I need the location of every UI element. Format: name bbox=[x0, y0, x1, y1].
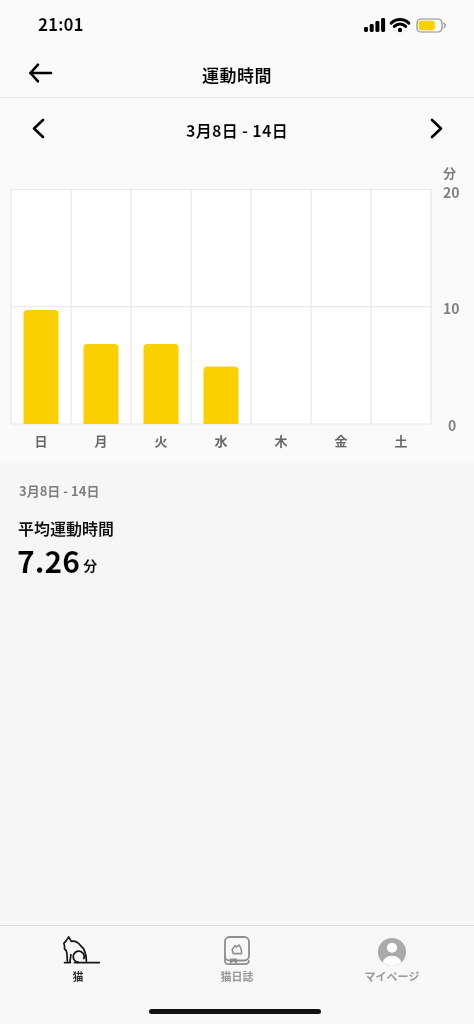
button[interactable]: 猫 bbox=[38, 927, 118, 995]
button[interactable] bbox=[414, 108, 458, 148]
button[interactable]: 猫日誌 bbox=[197, 927, 277, 995]
staticText: 平均運動時間 bbox=[18, 516, 115, 539]
staticText: 水 bbox=[214, 431, 228, 450]
staticText: マイページ bbox=[352, 968, 432, 984]
staticText: 20 bbox=[443, 182, 460, 202]
staticText: 分 bbox=[80, 555, 98, 575]
staticText: 分 bbox=[443, 163, 457, 182]
staticText: 3月8日 - 14日 bbox=[0, 118, 474, 141]
staticText: 10 bbox=[443, 298, 460, 318]
staticText: 猫 bbox=[38, 968, 118, 984]
staticText: 7.26 bbox=[17, 538, 80, 581]
staticText: 金 bbox=[334, 431, 348, 450]
staticText: 月 bbox=[94, 431, 108, 450]
staticText: 土 bbox=[394, 431, 408, 450]
button[interactable] bbox=[16, 108, 60, 148]
button[interactable] bbox=[18, 56, 62, 90]
staticText: 21:01 bbox=[38, 11, 84, 36]
staticText: 火 bbox=[154, 431, 168, 450]
staticText: 日 bbox=[34, 431, 48, 450]
button[interactable]: マイページ bbox=[352, 927, 432, 995]
staticText: 0 bbox=[448, 415, 457, 435]
staticText: 木 bbox=[274, 431, 288, 450]
staticText: 猫日誌 bbox=[197, 968, 277, 984]
staticText: 運動時間 bbox=[0, 62, 474, 87]
staticText: 3月8日 - 14日 bbox=[19, 481, 100, 500]
